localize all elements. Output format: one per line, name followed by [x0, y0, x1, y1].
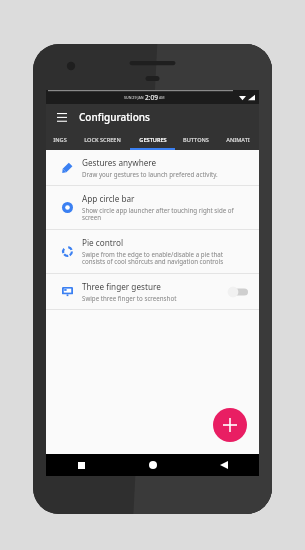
button[interactable]: Menu: [54, 109, 70, 125]
staticText: Swipe three finger to screenshot: [82, 294, 177, 302]
button[interactable]: ANIMATI: [217, 130, 259, 150]
button[interactable]: BUTTONS: [175, 130, 217, 150]
button[interactable]: GESTURES: [130, 130, 175, 150]
staticText: Three finger gesture: [82, 281, 161, 292]
staticText: Show circle app launcher after touching …: [82, 206, 247, 222]
button[interactable]: LOCK SCREEN: [74, 130, 130, 150]
staticText: SUN 29 JAN: [124, 95, 145, 100]
staticText: Configurations: [79, 110, 150, 124]
button[interactable]: Gestures anywhere: [46, 150, 259, 185]
button[interactable]: INGS: [46, 130, 74, 150]
staticText: LOCK SCREEN: [84, 136, 121, 144]
staticText: AM: [158, 95, 165, 100]
button[interactable]: Add: [213, 408, 247, 442]
staticText: BUTTONS: [183, 136, 209, 144]
button[interactable]: Pie control: [46, 230, 259, 273]
staticText: INGS: [53, 136, 67, 144]
button[interactable]: Back: [188, 454, 259, 476]
staticText: Swipe from the edge to enable/disable a …: [82, 250, 247, 266]
staticText: ANIMATI: [226, 136, 250, 144]
staticText: Pie control: [82, 237, 123, 248]
staticText: Gestures anywhere: [82, 157, 157, 168]
staticText: App circle bar: [82, 193, 135, 204]
staticText: Draw your gestures to launch prefered ac…: [82, 170, 218, 178]
button[interactable]: Toggle three finger gesture: [227, 285, 251, 299]
button[interactable]: Home: [117, 454, 188, 476]
staticText: 2:09: [145, 93, 158, 102]
button[interactable]: Recents: [46, 454, 117, 476]
button[interactable]: App circle bar: [46, 186, 259, 229]
button[interactable]: Three finger gesture: [46, 274, 259, 309]
staticText: GESTURES: [139, 136, 167, 144]
